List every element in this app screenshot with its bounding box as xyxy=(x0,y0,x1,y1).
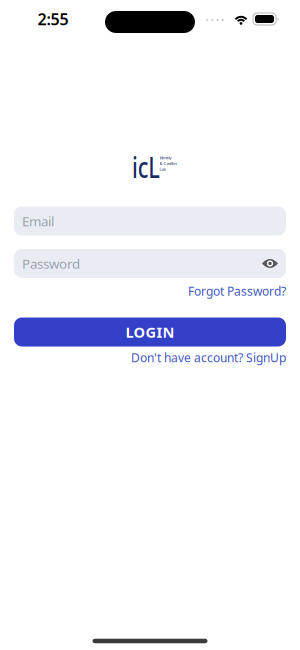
staticText: Password xyxy=(22,255,80,272)
button[interactable]: Password xyxy=(14,249,286,278)
staticText: & Conflict xyxy=(159,161,176,166)
staticText: LOGIN xyxy=(125,322,174,342)
staticText: icL xyxy=(127,147,165,186)
button[interactable]: Forgot Password? xyxy=(188,283,286,299)
button[interactable]: Email xyxy=(14,206,286,235)
staticText: 2:55 xyxy=(37,8,68,30)
staticText: Lab xyxy=(159,167,165,172)
staticText: Email xyxy=(22,212,54,230)
staticText: Identity xyxy=(159,155,171,160)
button[interactable]: Don't have account? SignUp xyxy=(131,349,286,365)
button[interactable]: LOGIN xyxy=(14,317,286,346)
staticText: Don't have account? SignUp xyxy=(131,349,286,365)
button[interactable] xyxy=(262,258,278,269)
staticText: Forgot Password? xyxy=(188,283,286,299)
